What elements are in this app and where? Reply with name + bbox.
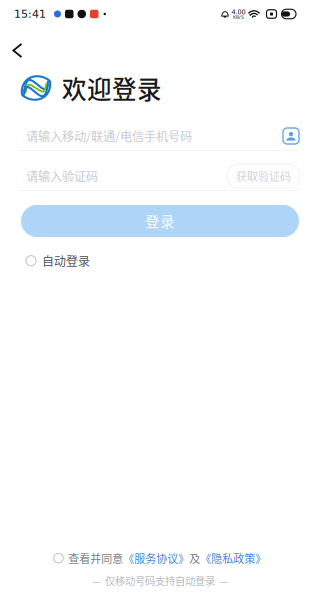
staticText: 获取验证码 — [236, 168, 291, 184]
staticText: 欢迎登录 — [62, 70, 162, 106]
staticText: 登录 — [145, 210, 175, 231]
button[interactable]: 登录 — [21, 205, 299, 237]
staticText: 查看并同意 — [68, 550, 123, 566]
staticText: 及 — [189, 550, 200, 566]
staticText: — 仅移动号码支持自动登录 — — [92, 573, 228, 588]
staticText: 请输入验证码 — [26, 167, 98, 185]
staticText: 4.00 — [231, 8, 245, 16]
staticText: 15:41 — [14, 8, 46, 20]
button[interactable]: 《服务协议》 — [123, 547, 189, 569]
button[interactable]: 获取验证码 — [227, 164, 300, 188]
button[interactable]: 自动登录 — [26, 249, 90, 272]
button[interactable]: 查看并同意 — [54, 547, 123, 569]
staticText: 《服务协议》 — [123, 550, 189, 566]
staticText: 《隐私政策》 — [200, 550, 266, 566]
button[interactable]: 《隐私政策》 — [200, 547, 266, 569]
button[interactable]: 返回 — [0, 28, 38, 64]
staticText: 请输入移动/联通/电信手机号码 — [26, 127, 192, 145]
staticText: KB/S — [233, 15, 244, 20]
staticText: 自动登录 — [42, 252, 90, 269]
button[interactable]: 从通讯录选择 — [277, 123, 300, 149]
